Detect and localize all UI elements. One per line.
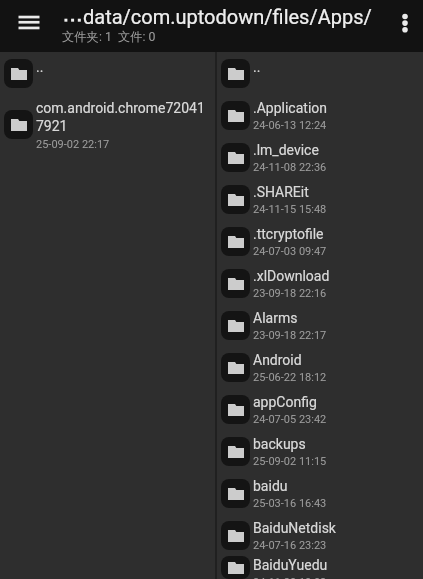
- staticText: 24-11-15 15:48: [253, 203, 327, 216]
- staticText: data/com.uptodown/files/Apps/: [83, 5, 372, 28]
- staticText: baidu: [253, 478, 288, 494]
- staticText: ..: [253, 59, 261, 75]
- staticText: Android: [253, 352, 302, 368]
- staticText: BaiduYuedu: [253, 557, 328, 573]
- staticText: com.android.chrome720417921: [36, 100, 211, 135]
- staticText: .SHAREit: [253, 184, 309, 200]
- staticText: backups: [253, 436, 306, 452]
- staticText: .Application: [253, 100, 327, 116]
- button[interactable]: ..: [217, 52, 423, 94]
- staticText: .lm_device: [253, 142, 319, 158]
- button[interactable]: .SHAREit: [217, 178, 423, 220]
- button[interactable]: .ttcryptofile: [217, 220, 423, 262]
- button[interactable]: com.android.chrome720417921: [0, 94, 215, 155]
- button[interactable]: backups: [217, 430, 423, 472]
- staticText: 24-07-05 23:42: [253, 413, 327, 426]
- staticText: 25-03-16 16:43: [253, 497, 327, 510]
- button[interactable]: Menu: [8, 0, 50, 52]
- staticText: .xlDownload: [253, 268, 330, 284]
- button[interactable]: .lm_device: [217, 136, 423, 178]
- button[interactable]: More options: [385, 0, 423, 52]
- button[interactable]: .xlDownload: [217, 262, 423, 304]
- button[interactable]: Alarms: [217, 304, 423, 346]
- staticText: 23-09-18 22:16: [253, 287, 327, 300]
- staticText: 25-09-02 22:17: [36, 138, 110, 151]
- staticText: 25-06-22 18:12: [253, 371, 327, 384]
- staticText: 24-07-03 09:47: [253, 245, 327, 258]
- button[interactable]: BaiduNetdisk: [217, 514, 423, 556]
- staticText: Alarms: [253, 310, 298, 326]
- button[interactable]: ..: [0, 52, 215, 94]
- staticText: 23-09-18 22:17: [253, 329, 327, 342]
- staticText: appConfig: [253, 394, 317, 410]
- staticText: 24-07-16 23:23: [253, 539, 327, 552]
- staticText: 25-09-02 11:15: [253, 455, 327, 468]
- button[interactable]: .Application: [217, 94, 423, 136]
- staticText: 24-06-13 12:24: [253, 119, 327, 132]
- staticText: ..: [36, 59, 44, 75]
- staticText: 24-11-20 10:02: [253, 576, 327, 579]
- staticText: 文件夹: 1 文件: 0: [62, 29, 156, 44]
- button[interactable]: Android: [217, 346, 423, 388]
- staticText: BaiduNetdisk: [253, 520, 336, 536]
- staticText: .ttcryptofile: [253, 226, 324, 242]
- staticText: 24-11-08 22:36: [253, 161, 327, 174]
- button[interactable]: baidu: [217, 472, 423, 514]
- button[interactable]: appConfig: [217, 388, 423, 430]
- button[interactable]: BaiduYuedu: [217, 556, 423, 579]
